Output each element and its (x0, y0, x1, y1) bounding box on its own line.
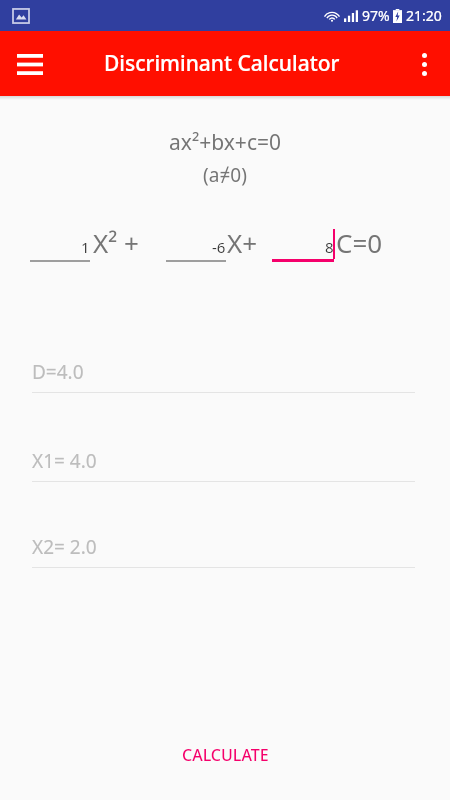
button[interactable]: CALCULATE (164, 736, 287, 774)
staticText: X² + (93, 225, 139, 260)
staticText: Discriminant Calculator (104, 49, 340, 78)
staticText: X1= 4.0 (32, 448, 97, 474)
staticText: 21:20 (406, 6, 442, 25)
staticText: D=4.0 (32, 359, 84, 385)
staticText: 8 (325, 237, 334, 257)
staticText: -6 (212, 237, 226, 257)
button[interactable]: More options (403, 43, 445, 85)
staticText: X2= 2.0 (32, 534, 97, 560)
button[interactable]: X2= 2.0 (32, 534, 415, 568)
button[interactable]: Open navigation drawer (8, 42, 52, 86)
staticText: 97% (362, 6, 390, 25)
staticText: 1 (81, 237, 90, 257)
button[interactable]: Coefficient a (30, 225, 90, 271)
staticText: ax²+bx+c=0 (169, 128, 281, 157)
staticText: C=0 (336, 225, 383, 260)
button[interactable]: X1= 4.0 (32, 448, 415, 482)
button[interactable]: Coefficient c (272, 225, 334, 271)
staticText: X+ (227, 225, 258, 260)
button[interactable]: D=4.0 (32, 359, 415, 393)
button[interactable]: Coefficient b (166, 225, 226, 271)
staticText: (a≠0) (203, 162, 247, 188)
staticText: CALCULATE (182, 744, 269, 766)
